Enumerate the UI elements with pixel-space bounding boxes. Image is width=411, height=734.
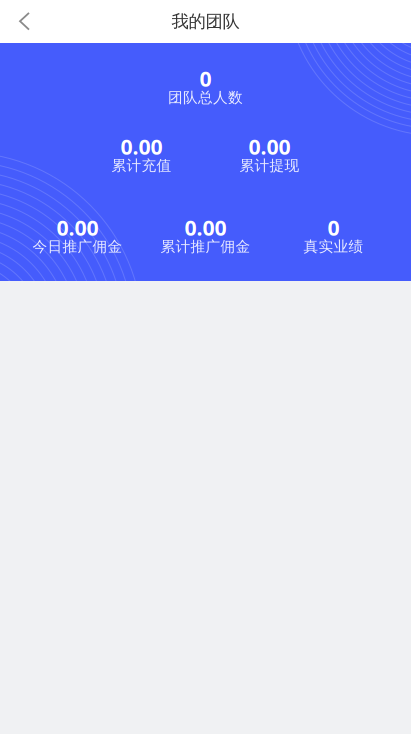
staticText: 0.00 (248, 132, 290, 161)
staticText: 0.00 (184, 213, 226, 242)
staticText: 我的团队 (171, 11, 239, 32)
staticText: 0 (199, 64, 211, 93)
button[interactable]: Back (0, 0, 49, 43)
staticText: 0.00 (56, 213, 98, 242)
staticText: 0.00 (120, 132, 162, 161)
staticText: 累计充值 (111, 157, 171, 175)
staticText: 团队总人数 (168, 89, 243, 107)
staticText: 累计提现 (239, 157, 299, 175)
staticText: 累计推广佣金 (160, 238, 250, 256)
staticText: 0 (327, 213, 339, 242)
staticText: 真实业绩 (303, 238, 363, 256)
staticText: 今日推广佣金 (32, 238, 122, 256)
